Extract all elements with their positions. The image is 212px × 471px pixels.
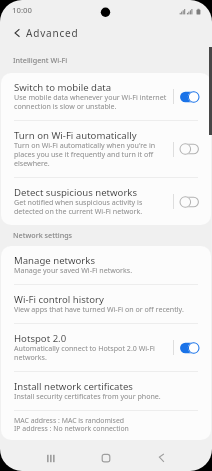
button[interactable]: Hotspot 2.0	[1, 324, 211, 371]
staticText: View apps that have turned Wi-Fi on or o…	[14, 305, 184, 314]
staticText: Install security certificates from your …	[14, 392, 161, 401]
button[interactable]: Detect suspicious networks	[1, 178, 211, 225]
staticText: Manage your saved Wi-Fi networks.	[14, 266, 133, 275]
button[interactable]: Back	[147, 443, 177, 471]
staticText: IP address : No network connection	[14, 425, 129, 433]
staticText: MAC address : MAC is randomised	[14, 417, 125, 425]
staticText: Advanced	[26, 28, 79, 40]
button[interactable]: Wi-Fi control history	[1, 285, 211, 323]
staticText: Network settings	[13, 231, 73, 240]
staticText: Install network certificates	[14, 381, 133, 392]
staticText: Wi-Fi control history	[14, 294, 104, 305]
button[interactable]: Switch to mobile data	[1, 73, 211, 120]
staticText: Automatically connect to Hotspot 2.0 Wi-…	[14, 344, 168, 362]
staticText: Intelligent Wi-Fi	[13, 56, 68, 65]
button[interactable]: On	[179, 341, 200, 355]
button[interactable]: Manage networks	[1, 246, 211, 284]
staticText: Turn on Wi-Fi automatically when you're …	[14, 141, 168, 168]
button[interactable]: Off	[179, 195, 200, 209]
staticText: Turn on Wi-Fi automatically	[14, 130, 137, 141]
button[interactable]: Recent apps	[37, 443, 67, 471]
button[interactable]: On	[179, 90, 200, 104]
button[interactable]: Turn on Wi-Fi automatically	[1, 121, 211, 177]
staticText: 10:00	[12, 6, 32, 15]
button[interactable]: Install network certificates	[1, 372, 211, 410]
staticText: Switch to mobile data	[14, 82, 112, 93]
staticText: Detect suspicious networks	[14, 187, 138, 198]
button[interactable]: Off	[179, 142, 200, 156]
staticText: Manage networks	[14, 255, 96, 266]
staticText: Hotspot 2.0	[14, 333, 67, 344]
button[interactable]: Navigate up	[7, 24, 27, 44]
staticText: Use mobile data whenever your Wi-Fi inte…	[14, 93, 168, 111]
button[interactable]: Home	[91, 443, 121, 471]
staticText: Get notified when suspicious activity is…	[14, 198, 168, 216]
